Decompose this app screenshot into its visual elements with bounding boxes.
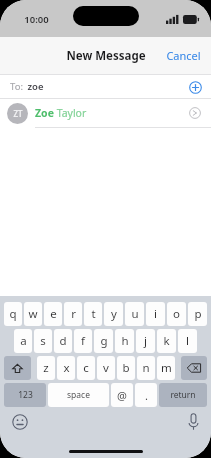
- button[interactable]: Backspace: [181, 356, 207, 380]
- staticText: j: [144, 333, 147, 349]
- staticText: c: [83, 360, 89, 376]
- button[interactable]: @: [111, 383, 133, 407]
- button[interactable]: 123: [4, 383, 46, 407]
- button[interactable]: j: [136, 329, 155, 353]
- staticText: Zoe Taylor: [35, 106, 87, 120]
- button[interactable]: d: [54, 329, 72, 353]
- staticText: New Message: [66, 48, 146, 64]
- staticText: o: [173, 306, 180, 322]
- button[interactable]: y: [104, 302, 123, 326]
- button[interactable]: q: [4, 302, 22, 326]
- button[interactable]: s: [34, 329, 52, 353]
- staticText: x: [63, 360, 70, 376]
- button[interactable]: m: [157, 356, 175, 380]
- staticText: 10:00: [24, 13, 49, 26]
- button[interactable]: b: [117, 356, 135, 380]
- button[interactable]: c: [77, 356, 95, 380]
- staticText: s: [40, 333, 46, 349]
- button[interactable]: return: [159, 383, 207, 407]
- button[interactable]: e: [44, 302, 62, 326]
- button[interactable]: o: [167, 302, 186, 326]
- staticText: z: [43, 360, 49, 376]
- staticText: u: [131, 306, 139, 322]
- staticText: Cancel: [166, 48, 201, 63]
- button[interactable]: a: [14, 329, 32, 353]
- button[interactable]: w: [24, 302, 42, 326]
- staticText: zoe: [27, 80, 44, 93]
- staticText: .: [145, 388, 148, 403]
- button[interactable]: k: [157, 329, 176, 353]
- staticText: a: [20, 333, 27, 349]
- staticText: w: [28, 306, 38, 322]
- button[interactable]: Contact details: [186, 104, 204, 122]
- button[interactable]: r: [64, 302, 82, 326]
- button[interactable]: u: [125, 302, 144, 326]
- staticText: q: [9, 306, 17, 322]
- staticText: l: [186, 333, 189, 349]
- button[interactable]: space: [48, 383, 109, 407]
- staticText: g: [100, 333, 108, 349]
- button[interactable]: .: [135, 383, 157, 407]
- button[interactable]: n: [137, 356, 155, 380]
- button[interactable]: Emoji keyboard: [12, 414, 28, 430]
- staticText: b: [122, 360, 130, 376]
- staticText: f: [81, 333, 85, 349]
- button[interactable]: Shift: [4, 356, 31, 380]
- staticText: ZT: [13, 108, 23, 119]
- staticText: h: [121, 333, 129, 349]
- button[interactable]: Add contact: [185, 77, 205, 97]
- staticText: t: [91, 306, 96, 322]
- staticText: i: [154, 306, 157, 322]
- button[interactable]: g: [94, 329, 113, 353]
- button[interactable]: Cancel: [156, 40, 211, 71]
- button[interactable]: f: [74, 329, 92, 353]
- staticText: space: [67, 389, 90, 401]
- staticText: To:: [10, 80, 23, 93]
- staticText: @: [117, 388, 127, 403]
- button[interactable]: l: [178, 329, 197, 353]
- staticText: e: [50, 306, 57, 322]
- staticText: return: [170, 389, 196, 401]
- staticText: n: [142, 360, 150, 376]
- button[interactable]: h: [115, 329, 134, 353]
- staticText: m: [161, 360, 172, 376]
- button[interactable]: i: [146, 302, 165, 326]
- button[interactable]: Dictation: [188, 413, 199, 431]
- button[interactable]: z: [37, 356, 55, 380]
- button[interactable]: v: [97, 356, 115, 380]
- staticText: r: [71, 306, 76, 322]
- button[interactable]: x: [57, 356, 75, 380]
- staticText: k: [163, 333, 170, 349]
- button[interactable]: t: [84, 302, 102, 326]
- staticText: d: [59, 333, 67, 349]
- button[interactable]: p: [188, 302, 207, 326]
- button[interactable]: ZT: [0, 99, 211, 127]
- staticText: 123: [18, 389, 33, 401]
- staticText: p: [194, 306, 202, 322]
- staticText: v: [103, 360, 109, 376]
- staticText: y: [111, 306, 117, 322]
